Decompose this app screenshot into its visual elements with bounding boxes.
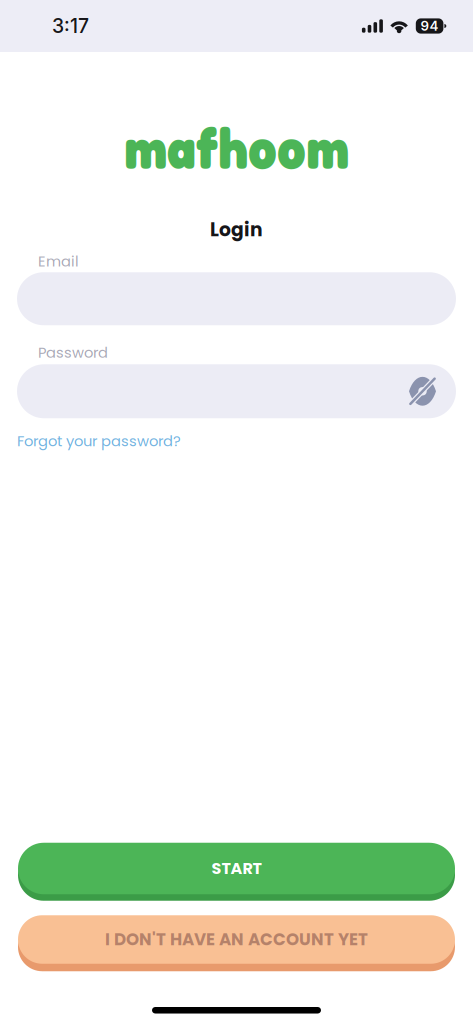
staticText: Login [210,217,263,243]
button[interactable]: START [18,839,455,897]
button[interactable]: I DON'T HAVE AN ACCOUNT YET [18,911,455,967]
staticText: Password [38,342,108,363]
staticText: 3:17 [52,14,89,38]
staticText: 94 [421,18,439,34]
staticText: START [211,857,261,880]
staticText: I DON'T HAVE AN ACCOUNT YET [105,928,368,951]
button[interactable]: Show password [409,380,456,402]
staticText: Forgot your password? [17,431,181,451]
button[interactable]: Forgot your password? [17,418,181,455]
staticText: mafhoom [124,112,349,181]
staticText: Email [38,251,79,272]
